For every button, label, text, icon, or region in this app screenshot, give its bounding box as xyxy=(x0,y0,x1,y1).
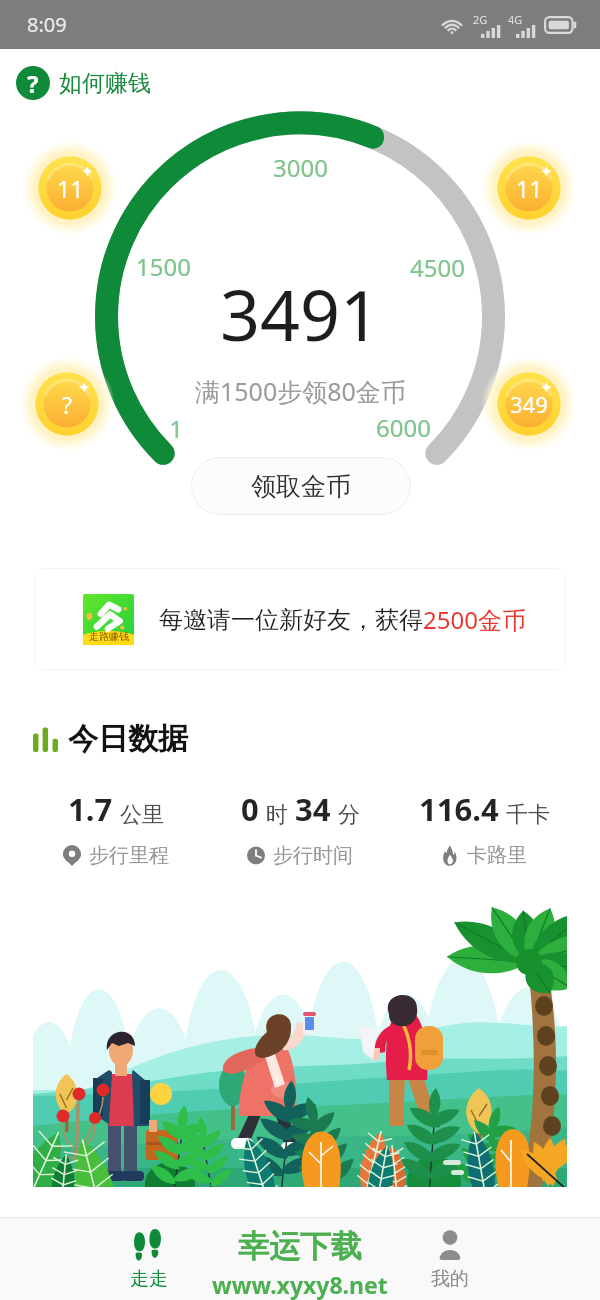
staticText: www.xyxy8.net xyxy=(212,1269,388,1300)
staticText: 步行时间 xyxy=(273,843,353,868)
staticText: 公里 xyxy=(120,801,164,829)
staticText: 领取金币 xyxy=(251,471,351,502)
staticText: 2G xyxy=(473,12,488,27)
button[interactable]: 116.4 xyxy=(392,788,576,868)
staticText: 0 xyxy=(241,788,259,830)
staticText: 幸运下载 xyxy=(238,1227,362,1266)
staticText: 1 xyxy=(169,412,183,445)
staticText: 4500 xyxy=(410,251,465,284)
button[interactable]: ? xyxy=(16,66,151,100)
staticText: 34 xyxy=(295,788,331,830)
button[interactable]: 349 xyxy=(481,356,577,452)
staticText: 今日数据 xyxy=(68,720,188,758)
staticText: 2500金币 xyxy=(423,603,526,636)
button[interactable]: ? xyxy=(19,356,115,452)
staticText: 我的 xyxy=(431,1267,469,1291)
staticText: 3491 xyxy=(220,266,381,356)
staticText: 分 xyxy=(338,801,360,829)
button[interactable]: 1.7 xyxy=(24,788,208,868)
staticText: 走路赚钱 xyxy=(89,630,129,643)
button[interactable]: 领取金币 xyxy=(191,457,411,515)
staticText: 时 xyxy=(266,801,288,829)
button[interactable]: 走路赚钱 xyxy=(34,568,566,670)
staticText: 卡路里 xyxy=(467,843,527,868)
staticText: 如何赚钱 xyxy=(59,69,151,98)
staticText: 1.7 xyxy=(68,788,113,830)
button[interactable]: 11 xyxy=(22,140,118,236)
staticText: 11 xyxy=(516,173,543,204)
button[interactable]: 0 xyxy=(208,788,392,868)
staticText: 1500 xyxy=(136,250,191,283)
staticText: 8:09 xyxy=(27,11,67,38)
button[interactable]: 11 xyxy=(481,140,577,236)
staticText: ? xyxy=(27,67,39,100)
staticText: 116.4 xyxy=(419,788,499,830)
button[interactable]: 我的 xyxy=(400,1218,500,1300)
button[interactable]: 走走 xyxy=(99,1218,199,1300)
staticText: 每邀请一位新好友，获得 xyxy=(159,605,423,635)
staticText: 走走 xyxy=(130,1267,168,1291)
button[interactable]: 今日数据 xyxy=(33,719,188,759)
staticText: 千卡 xyxy=(506,801,550,829)
staticText: 11 xyxy=(57,173,84,204)
staticText: ? xyxy=(62,389,72,420)
staticText: 4G xyxy=(508,12,523,27)
staticText: 6000 xyxy=(376,411,431,444)
staticText: 满1500步领80金币 xyxy=(195,374,406,408)
staticText: 步行里程 xyxy=(89,843,169,868)
staticText: 3000 xyxy=(273,151,328,184)
staticText: 349 xyxy=(510,389,548,419)
